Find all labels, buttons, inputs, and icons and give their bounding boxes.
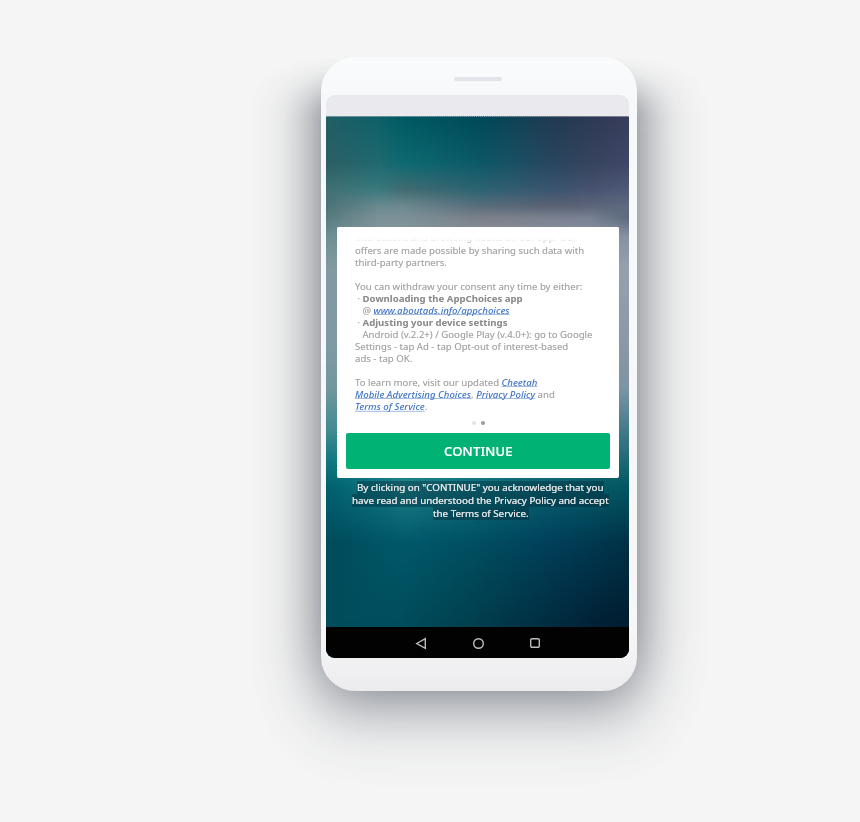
staticText: CONTINUE (444, 442, 513, 460)
staticText: interactions and browsing habits on our … (355, 231, 593, 413)
staticText: By clicking on "CONTINUE" you acknowledg… (357, 481, 604, 494)
staticText: have read and understood the Privacy Pol… (352, 494, 609, 507)
button[interactable]: Recents (522, 630, 548, 656)
button[interactable]: CONTINUE (346, 433, 610, 469)
button[interactable]: Back (408, 630, 434, 656)
button[interactable]: Home (465, 630, 491, 656)
staticText: the Terms of Service. (433, 507, 529, 520)
